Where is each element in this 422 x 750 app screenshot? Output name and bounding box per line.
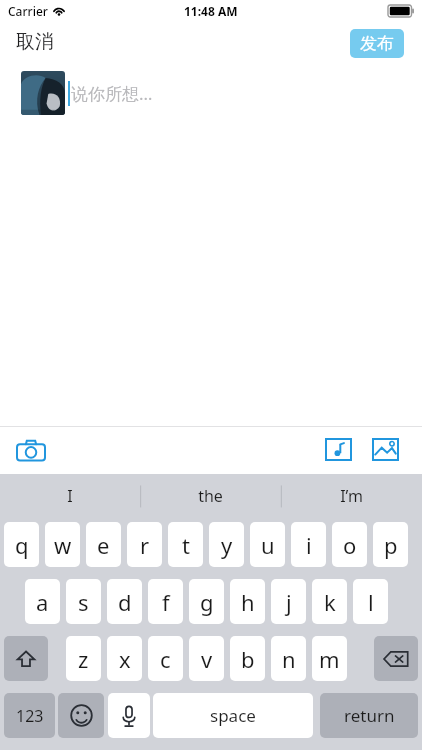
button[interactable]: 说你所想…	[68, 71, 368, 115]
button[interactable]: m	[312, 636, 347, 681]
button[interactable]: f	[148, 579, 183, 624]
button[interactable]: v	[189, 636, 224, 681]
staticText: q	[15, 530, 29, 560]
button[interactable]: x	[107, 636, 142, 681]
button[interactable]: e	[86, 522, 121, 567]
staticText: u	[261, 530, 275, 560]
button[interactable]: p	[373, 522, 408, 567]
button[interactable]: r	[127, 522, 162, 567]
button[interactable]: y	[209, 522, 244, 567]
button[interactable]: 发布	[350, 29, 404, 58]
staticText: p	[384, 530, 398, 560]
staticText: I’m	[340, 485, 363, 507]
button[interactable]: u	[250, 522, 285, 567]
staticText: n	[282, 644, 296, 674]
button[interactable]: Music	[325, 438, 353, 466]
button[interactable]: w	[45, 522, 80, 567]
button[interactable]: l	[353, 579, 388, 624]
staticText: x	[119, 644, 131, 674]
button[interactable]: t	[168, 522, 203, 567]
button[interactable]: 123	[4, 693, 55, 738]
staticText: Carrier	[8, 3, 48, 19]
staticText: the	[198, 485, 223, 507]
button[interactable]: I	[0, 474, 140, 518]
staticText: v	[201, 644, 213, 674]
button[interactable]: b	[230, 636, 265, 681]
button[interactable]: a	[25, 579, 60, 624]
staticText: k	[324, 587, 336, 617]
button[interactable]: o	[332, 522, 367, 567]
staticText: return	[344, 704, 395, 727]
staticText: t	[182, 530, 190, 560]
button[interactable]: c	[148, 636, 183, 681]
staticText: m	[319, 644, 340, 674]
staticText: d	[118, 587, 132, 617]
staticText: l	[368, 587, 374, 617]
staticText: h	[241, 587, 255, 617]
button[interactable]: s	[66, 579, 101, 624]
button[interactable]: the	[140, 474, 281, 518]
staticText: c	[160, 644, 171, 674]
staticText: 取消	[16, 30, 54, 54]
staticText: e	[97, 530, 110, 560]
button[interactable]: j	[271, 579, 306, 624]
button[interactable]: Backspace	[374, 636, 418, 681]
button[interactable]: k	[312, 579, 347, 624]
staticText: w	[54, 530, 72, 560]
button[interactable]: Dictation	[108, 693, 150, 738]
button[interactable]: d	[107, 579, 142, 624]
staticText: j	[286, 587, 292, 617]
button[interactable]: Emoji	[58, 693, 104, 738]
staticText: y	[221, 530, 233, 560]
button[interactable]: i	[291, 522, 326, 567]
button[interactable]: q	[4, 522, 39, 567]
button[interactable]: 取消	[10, 26, 60, 58]
button[interactable]: h	[230, 579, 265, 624]
staticText: s	[78, 587, 89, 617]
staticText: g	[200, 587, 214, 617]
staticText: space	[210, 704, 256, 727]
staticText: 说你所想…	[71, 82, 153, 105]
button[interactable]: space	[153, 693, 313, 738]
staticText: 发布	[360, 33, 394, 54]
button[interactable]: Camera	[16, 438, 52, 466]
staticText: f	[162, 587, 170, 617]
button[interactable]: z	[66, 636, 101, 681]
staticText: i	[306, 530, 312, 560]
button[interactable]: Shift	[4, 636, 48, 681]
button[interactable]: return	[320, 693, 418, 738]
staticText: b	[241, 644, 255, 674]
staticText: o	[343, 530, 357, 560]
button[interactable]: Photo	[372, 438, 400, 466]
staticText: I	[67, 485, 73, 507]
staticText: r	[140, 530, 150, 560]
staticText: z	[78, 644, 89, 674]
button[interactable]: I’m	[281, 474, 422, 518]
staticText: 123	[16, 705, 44, 727]
button[interactable]: n	[271, 636, 306, 681]
button[interactable]: g	[189, 579, 224, 624]
staticText: 11:48 AM	[184, 3, 238, 19]
staticText: a	[36, 587, 49, 617]
